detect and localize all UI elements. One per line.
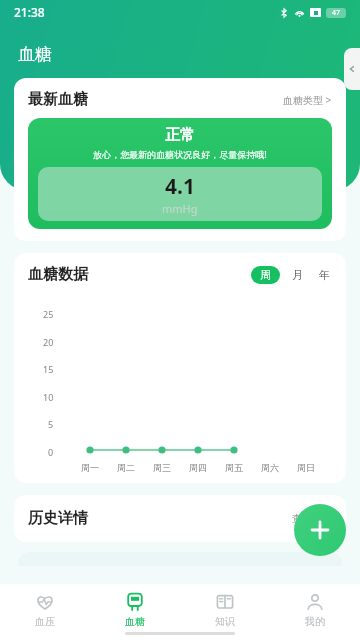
staticText: 血糖类型 >	[283, 93, 332, 107]
staticText: 查看更多	[292, 512, 332, 525]
staticText: 放心，您最新的血糖状况良好，尽量保持哦!	[93, 148, 267, 160]
staticText: 血糖	[125, 615, 145, 628]
staticText: 周三	[153, 462, 171, 473]
staticText: 21:38	[14, 4, 45, 20]
staticText: 血压	[35, 615, 55, 628]
button[interactable]: 展开	[344, 48, 360, 90]
staticText: 周二	[117, 462, 135, 473]
button[interactable]: 周	[251, 266, 280, 284]
staticText: mmHg	[162, 201, 198, 216]
staticText: 知识	[215, 615, 235, 628]
staticText: 25	[43, 308, 54, 320]
button[interactable]: 血糖类型 >	[283, 93, 332, 107]
staticText: 正常	[165, 126, 195, 145]
staticText: 年	[319, 268, 330, 282]
staticText: 血糖	[18, 44, 52, 65]
staticText: 周五	[225, 462, 243, 473]
staticText: 周一	[81, 462, 99, 473]
staticText: 周	[260, 268, 271, 282]
staticText: 15	[43, 363, 54, 375]
staticText: 月	[292, 268, 303, 282]
staticText: 我的	[305, 615, 325, 628]
button[interactable]: 添加记录	[294, 504, 346, 556]
staticText: 血糖数据	[28, 265, 88, 284]
staticText: 20	[43, 336, 54, 348]
staticText: 历史详情	[28, 509, 88, 528]
staticText: 周日	[297, 462, 315, 473]
staticText: 最新血糖	[28, 90, 88, 109]
staticText: 0	[48, 446, 54, 458]
button[interactable]: 月	[290, 266, 305, 284]
staticText: 10	[43, 391, 54, 403]
button[interactable]: 历史详情	[14, 495, 346, 542]
button[interactable]: 血糖	[90, 584, 180, 640]
button[interactable]: 血压	[0, 584, 90, 640]
staticText: 周四	[189, 462, 207, 473]
staticText: 47	[332, 8, 341, 18]
staticText: 5	[48, 418, 54, 430]
button[interactable]: 我的	[270, 584, 360, 640]
staticText: 4.1	[165, 172, 195, 201]
button[interactable]: 知识	[180, 584, 270, 640]
staticText: 周六	[261, 462, 279, 473]
button[interactable]: 年	[317, 266, 332, 284]
